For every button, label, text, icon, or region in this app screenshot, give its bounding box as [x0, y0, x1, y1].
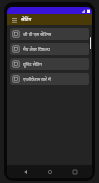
- button[interactable]: एप्लीकेशन बारे में: [10, 73, 89, 85]
- staticText: सेटिंग: [21, 16, 32, 23]
- button[interactable]: Back: [19, 165, 32, 178]
- button[interactable]: यूनिट सेटिंग: [10, 58, 89, 70]
- button[interactable]: Home: [43, 165, 56, 178]
- button[interactable]: मैप लेयर विकल्प: [10, 43, 89, 55]
- button[interactable]: Open navigation menu: [10, 16, 18, 24]
- staticText: जी पी एस सेटिंग्स: [23, 31, 52, 37]
- button[interactable]: Recent apps: [68, 165, 81, 178]
- button[interactable]: जी पी एस सेटिंग्स: [10, 28, 89, 40]
- staticText: एप्लीकेशन बारे में: [23, 76, 51, 82]
- staticText: यूनिट सेटिंग: [23, 61, 42, 67]
- staticText: मैप लेयर विकल्प: [23, 46, 50, 52]
